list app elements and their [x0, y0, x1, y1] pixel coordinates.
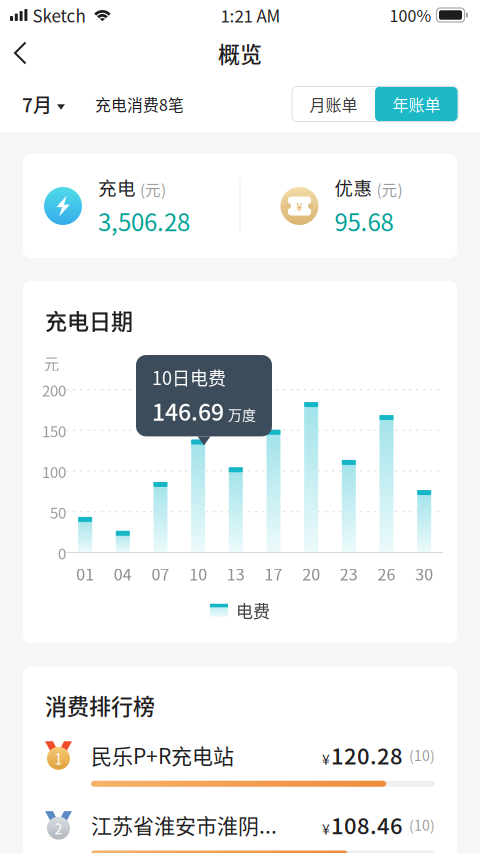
staticText: 充电消费8笔: [95, 93, 184, 115]
button[interactable]: 1: [23, 735, 457, 791]
staticText: 146.69: [152, 394, 224, 427]
staticText: 50: [50, 501, 66, 523]
staticText: 3,506.28: [98, 203, 190, 238]
button[interactable]: 7月: [22, 82, 65, 126]
staticText: 0: [58, 542, 66, 564]
staticText: 200: [42, 379, 66, 401]
staticText: 07: [151, 562, 169, 585]
staticText: 充电日期: [45, 304, 133, 336]
staticText: (10): [409, 814, 435, 835]
staticText: 2: [54, 818, 62, 838]
staticText: 1: [54, 748, 62, 768]
staticText: 120.28: [331, 739, 403, 771]
staticText: 7月: [22, 90, 52, 118]
staticText: 民乐P+R充电站: [91, 740, 234, 770]
staticText: 26: [377, 562, 395, 585]
staticText: 电费: [236, 598, 270, 623]
staticText: 月账单: [309, 92, 357, 116]
staticText: (元): [376, 178, 402, 200]
staticText: ¥: [296, 197, 303, 215]
staticText: 江苏省淮安市淮阴...: [91, 809, 277, 840]
button[interactable]: 年账单: [375, 86, 458, 121]
staticText: 元: [44, 352, 59, 374]
button[interactable]: 月账单: [292, 86, 375, 121]
staticText: 1:21 AM: [220, 3, 280, 27]
staticText: 万度: [228, 404, 256, 424]
staticText: 20: [302, 562, 320, 585]
staticText: 95.68: [334, 203, 393, 238]
staticText: 150: [42, 420, 66, 441]
staticText: 消费排行榜: [45, 689, 155, 721]
staticText: 01: [76, 562, 94, 585]
staticText: 100%: [389, 3, 431, 27]
staticText: 108.46: [331, 809, 403, 841]
staticText: ¥: [322, 748, 330, 769]
staticText: 23: [340, 562, 358, 585]
staticText: 概览: [218, 37, 262, 69]
staticText: 优惠: [334, 174, 372, 200]
staticText: 04: [114, 562, 132, 585]
staticText: 10日电费: [152, 364, 226, 390]
button[interactable]: 2: [23, 805, 457, 853]
staticText: 17: [264, 562, 282, 585]
staticText: 100: [42, 460, 66, 482]
staticText: 年账单: [392, 92, 440, 116]
button[interactable]: Back: [0, 30, 45, 75]
staticText: (元): [140, 178, 166, 200]
staticText: 30: [415, 562, 433, 585]
staticText: 充电: [98, 174, 136, 200]
staticText: 10: [189, 562, 207, 585]
staticText: 13: [227, 562, 245, 585]
staticText: Sketch: [32, 3, 85, 27]
staticText: ¥: [322, 818, 330, 839]
staticText: (10): [409, 745, 435, 765]
